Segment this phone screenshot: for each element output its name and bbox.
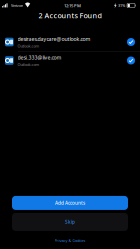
staticText: Skip: [65, 219, 75, 225]
button[interactable]: desi_333@live.com: [0, 51, 140, 69]
staticText: 31%: [118, 3, 125, 8]
button[interactable]: Privacy & Cookies: [54, 238, 85, 243]
staticText: desiraes.daycare@outlook.com: [18, 35, 91, 42]
staticText: Privacy & Cookies: [54, 238, 85, 243]
button[interactable]: desiraes.daycare@outlook.com: [0, 33, 140, 51]
staticText: Verizon: [11, 3, 23, 8]
staticText: 12:15 PM: [64, 3, 81, 8]
staticText: Outlook.com: [18, 43, 40, 49]
button[interactable]: Add Accounts: [12, 196, 128, 210]
button[interactable]: Skip: [12, 213, 128, 231]
staticText: desi_333@live.com: [18, 54, 62, 61]
staticText: 2 Accounts Found: [38, 11, 101, 20]
staticText: Outlook.com: [18, 62, 40, 67]
staticText: Add Accounts: [55, 200, 85, 206]
